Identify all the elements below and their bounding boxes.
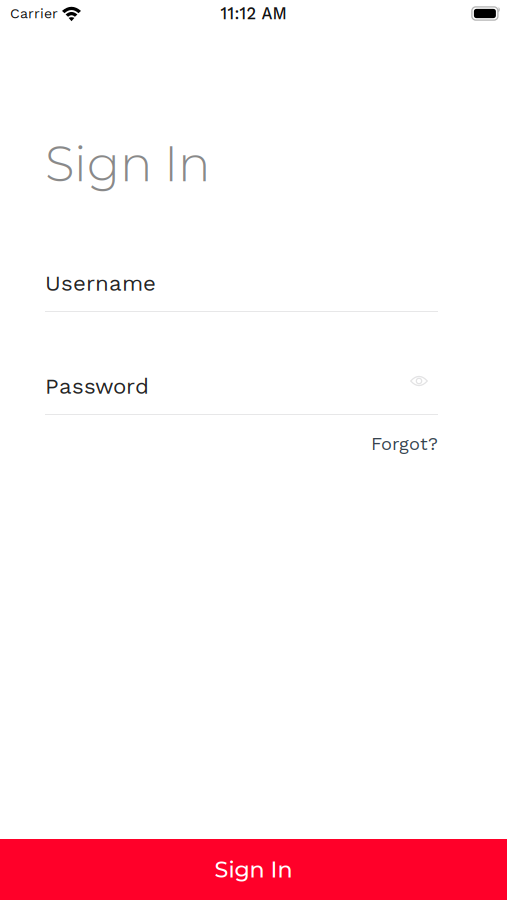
- staticText: Sign In: [214, 856, 292, 883]
- staticText: 11:12 AM: [220, 4, 286, 23]
- staticText: Forgot?: [371, 433, 438, 454]
- button[interactable]: Sign In: [0, 839, 507, 900]
- staticText: Carrier: [10, 5, 58, 22]
- button[interactable]: Show password: [410, 375, 438, 397]
- staticText: Sign In: [45, 135, 210, 193]
- staticText: Password: [45, 373, 149, 399]
- staticText: Username: [45, 270, 156, 296]
- button[interactable]: Forgot?: [371, 429, 438, 458]
